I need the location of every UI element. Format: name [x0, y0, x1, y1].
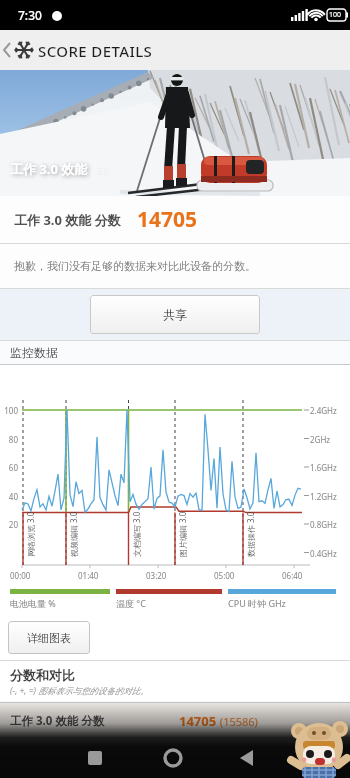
button[interactable]: 工作 3.0 效能 分数 [0, 703, 350, 739]
staticText: 03:20 [146, 570, 167, 581]
staticText: 1.6GHz [310, 462, 337, 473]
staticText: 详细图表 [27, 631, 71, 645]
button[interactable]: 详细图表 [8, 621, 90, 654]
staticText: 监控数据 [10, 345, 58, 360]
staticText: 电池电量 % [10, 597, 56, 609]
staticText: 1.2GHz [310, 491, 337, 502]
staticText: 100 [2, 405, 18, 416]
staticText: 60 [2, 462, 18, 473]
staticText: 0.4GHz [310, 548, 337, 559]
staticText: 7:30 [18, 7, 42, 23]
staticText: 工作 3.0 效能 分数 [10, 713, 105, 729]
staticText: 工作 3.0 效能 [10, 160, 88, 178]
staticText: 共享 [163, 307, 187, 322]
button[interactable]: 共享 [90, 295, 260, 334]
button[interactable] [233, 730, 350, 778]
button[interactable] [0, 730, 116, 778]
staticText: 06:40 [282, 570, 303, 581]
button[interactable]: SCORE DETAILS [0, 30, 350, 70]
staticText: 2.4GHz [310, 405, 337, 416]
staticText: 14705 [179, 712, 217, 730]
staticText: 80 [2, 434, 18, 445]
staticText: 100 [329, 10, 342, 20]
staticText: (15586) [217, 714, 258, 729]
staticText: 3.0 [97, 166, 109, 177]
staticText: 01:40 [78, 570, 99, 581]
staticText: 40 [2, 491, 18, 502]
staticText: 网络浏览 3.0 [25, 511, 36, 557]
staticText: 图片编辑 3.0 [177, 511, 188, 557]
staticText: 05:00 [214, 570, 235, 581]
staticText: CPU 时钟 GHz [228, 597, 286, 609]
staticText: 温度 °C [116, 597, 146, 609]
staticText: 工作 3.0 效能 分数 [14, 211, 121, 229]
staticText: 0.8GHz [310, 519, 337, 530]
staticText: 文档编写 3.0 [131, 511, 142, 557]
staticText: 00:00 [10, 570, 31, 581]
staticText: 数据操作 3.0 [245, 511, 256, 557]
staticText: 抱歉，我们没有足够的数据来对比此设备的分数。 [14, 259, 256, 273]
staticText: 分数和对比 [10, 667, 75, 683]
button[interactable] [116, 730, 233, 778]
staticText: (-, +, =) 图标表示与您的设备的对比。 [10, 685, 149, 697]
staticText: SCORE DETAILS [38, 41, 153, 61]
staticText: 20 [2, 519, 18, 530]
staticText: 14705 [137, 205, 198, 234]
staticText: 2GHz [310, 434, 331, 445]
staticText: 视频编辑 3.0 [68, 511, 79, 557]
